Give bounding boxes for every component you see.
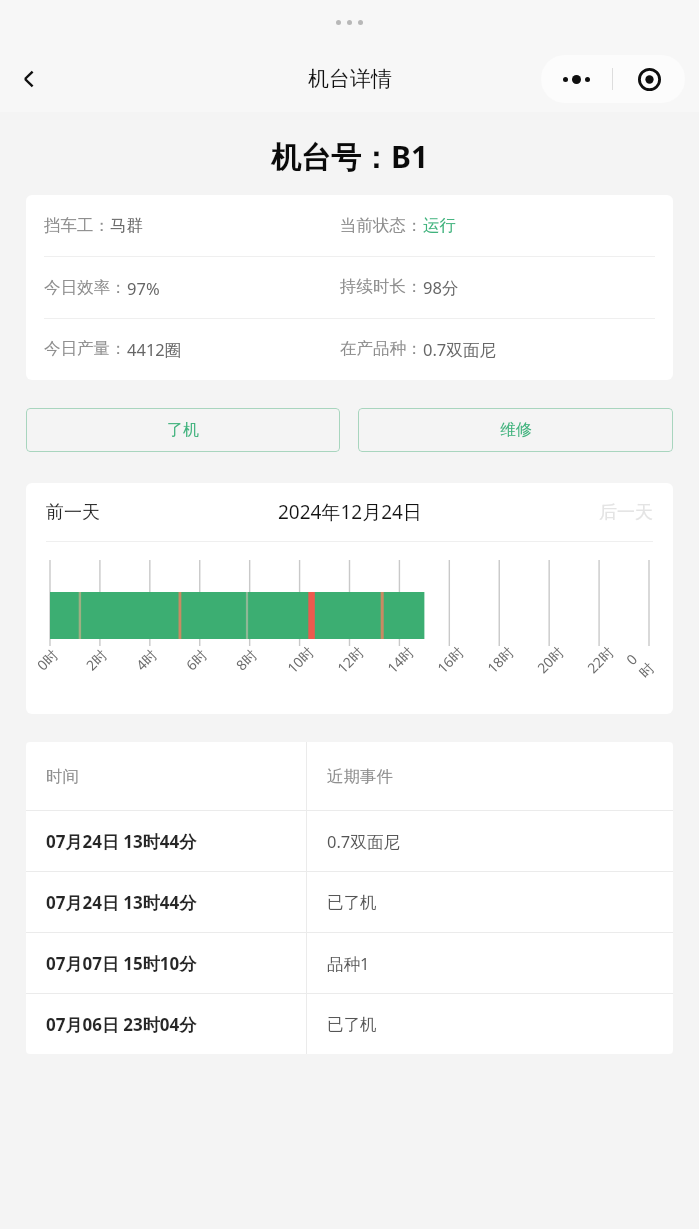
staticText: 挡车工：: [44, 215, 110, 236]
staticText: 0时: [33, 645, 62, 674]
staticText: 机台详情: [308, 66, 392, 92]
button[interactable]: Back: [6, 56, 52, 102]
button[interactable]: 今日效率：: [26, 257, 673, 318]
staticText: 6时: [182, 645, 211, 674]
button[interactable]: 后一天: [599, 501, 653, 524]
staticText: 14时: [383, 642, 418, 677]
staticText: 16时: [433, 642, 468, 677]
staticText: 后一天: [599, 501, 653, 524]
staticText: 18时: [483, 642, 518, 677]
staticText: 0.7双面尼: [327, 830, 400, 853]
staticText: 近期事件: [327, 766, 393, 787]
staticText: 马群: [110, 215, 143, 236]
button[interactable]: 挡车工：: [26, 195, 673, 256]
staticText: 4时: [132, 645, 161, 674]
staticText: 维修: [500, 420, 532, 440]
staticText: 4412圈: [127, 338, 182, 361]
staticText: 98分: [423, 276, 459, 299]
staticText: 22时: [583, 642, 618, 677]
staticText: 0.7双面尼: [423, 338, 496, 361]
staticText: 8时: [232, 645, 261, 674]
staticText: 07月06日 23时04分: [46, 1013, 197, 1036]
staticText: 时间: [46, 766, 79, 787]
staticText: 97%: [127, 277, 160, 299]
staticText: 12时: [333, 642, 368, 677]
staticText: 机台号：B1: [271, 136, 429, 177]
staticText: 当前状态：: [340, 215, 423, 236]
staticText: 持续时长：: [340, 276, 423, 297]
button[interactable]: 前一天: [46, 501, 100, 524]
staticText: 2024年12月24日: [278, 499, 422, 525]
staticText: 在产品种：: [340, 338, 423, 359]
staticText: 运行: [423, 215, 456, 236]
button[interactable]: 07月24日 13时44分: [26, 811, 673, 871]
button[interactable]: 时间: [26, 742, 673, 810]
staticText: 已了机: [327, 1014, 377, 1035]
staticText: 今日效率：: [44, 277, 127, 298]
staticText: 品种1: [327, 952, 370, 975]
button[interactable]: Close mini program: [613, 68, 685, 91]
button[interactable]: 07月24日 13时44分: [26, 872, 673, 932]
button[interactable]: 了机: [26, 408, 340, 452]
button[interactable]: More options: [541, 75, 612, 84]
staticText: 前一天: [46, 501, 100, 524]
staticText: 10时: [283, 642, 318, 677]
staticText: 20时: [533, 642, 568, 677]
staticText: 07月07日 15时10分: [46, 952, 197, 975]
staticText: 已了机: [327, 892, 377, 913]
button[interactable]: 07月06日 23时04分: [26, 994, 673, 1054]
staticText: 今日产量：: [44, 338, 127, 359]
button[interactable]: 今日产量：: [26, 319, 673, 380]
staticText: 了机: [167, 420, 199, 440]
button[interactable]: 07月07日 15时10分: [26, 933, 673, 993]
button[interactable]: 维修: [358, 408, 673, 452]
staticText: 07月24日 13时44分: [46, 830, 197, 853]
staticText: 07月24日 13时44分: [46, 891, 197, 914]
staticText: 2时: [82, 645, 111, 674]
